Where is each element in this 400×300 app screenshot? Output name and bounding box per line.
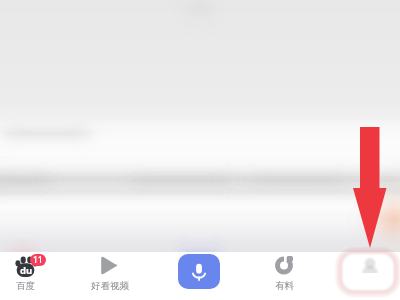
button[interactable]: 好看视频 (70, 252, 150, 300)
button[interactable]: My profile (339, 252, 397, 293)
button[interactable]: Voice search (178, 254, 220, 289)
staticText: 有料 (275, 280, 294, 292)
staticText: 好看视频 (91, 280, 129, 292)
button[interactable]: 有料 (244, 252, 324, 300)
staticText: du (20, 264, 33, 277)
button[interactable]: du (0, 252, 65, 300)
staticText: 百度 (16, 280, 35, 292)
staticText: 11 (33, 254, 43, 266)
